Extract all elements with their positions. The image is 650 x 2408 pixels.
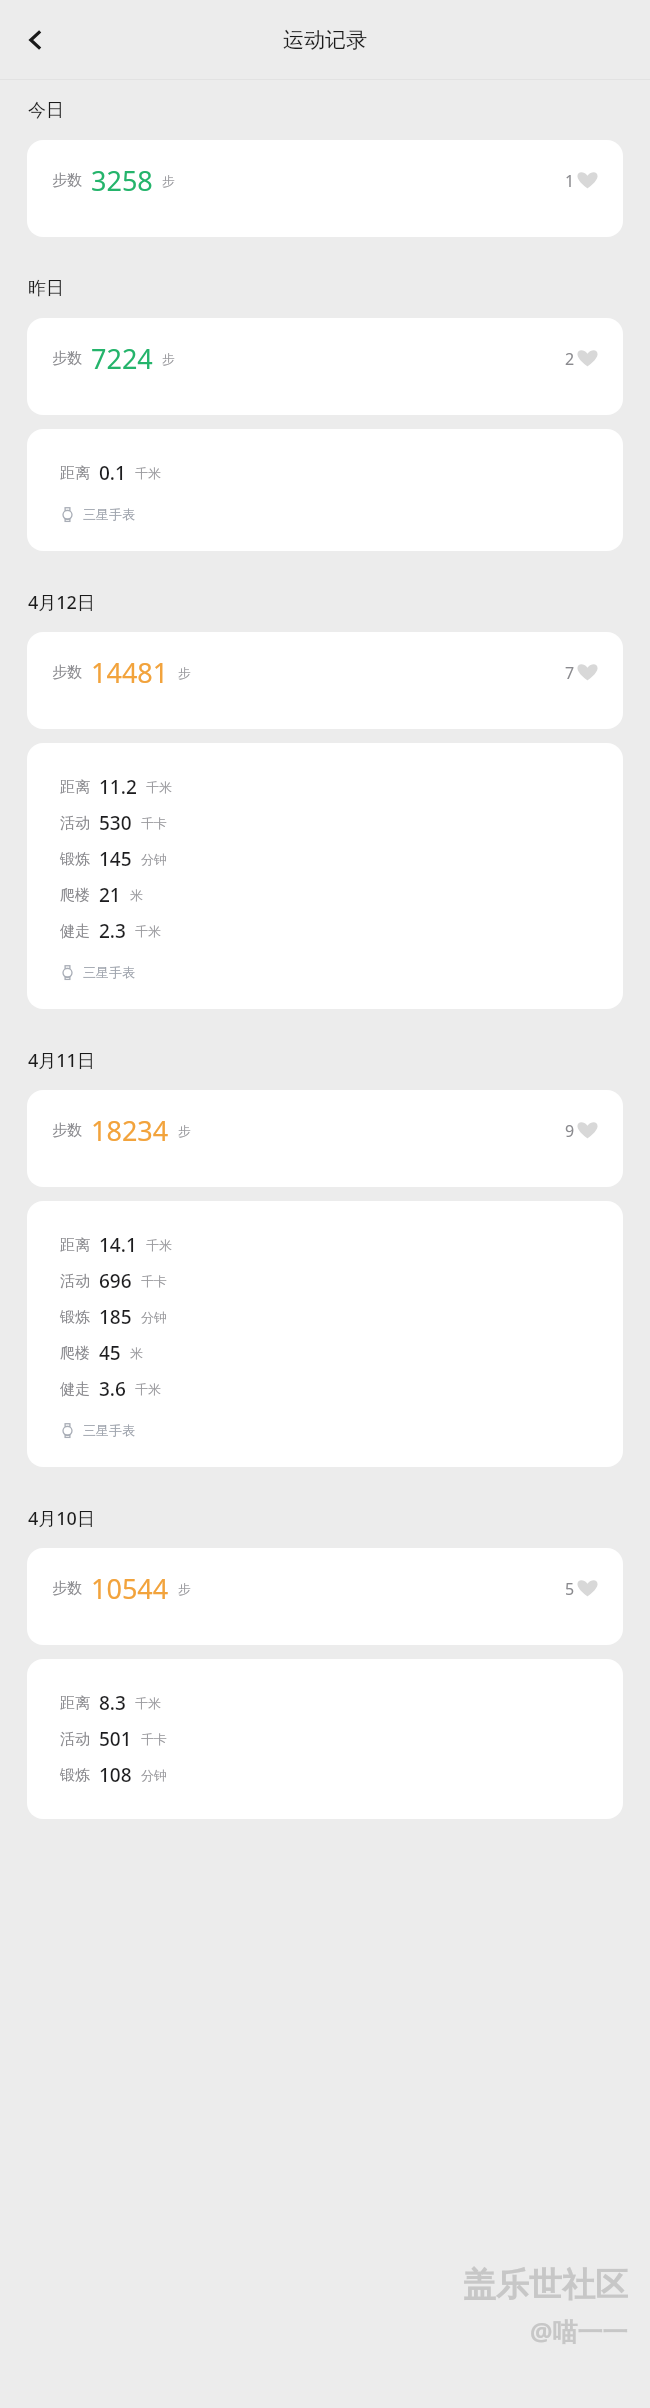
button[interactable]: 步数 bbox=[27, 1090, 623, 1187]
staticText: 爬楼 bbox=[60, 1344, 90, 1363]
button[interactable]: 距离 bbox=[27, 1659, 623, 1819]
staticText: 5 bbox=[565, 1578, 575, 1600]
staticText: 11.2 bbox=[99, 774, 137, 800]
staticText: 7 bbox=[565, 662, 575, 684]
staticText: 千米 bbox=[146, 779, 172, 795]
staticText: 4月11日 bbox=[28, 1048, 95, 1073]
staticText: 8.3 bbox=[99, 1690, 126, 1716]
staticText: 0.1 bbox=[99, 460, 126, 486]
staticText: 活动 bbox=[60, 814, 90, 833]
staticText: 185 bbox=[99, 1304, 132, 1330]
staticText: 步数 bbox=[52, 1121, 82, 1140]
button[interactable]: 距离 bbox=[27, 1201, 623, 1467]
staticText: 3258 bbox=[91, 162, 153, 199]
staticText: 45 bbox=[99, 1340, 121, 1366]
staticText: 千卡 bbox=[141, 1273, 167, 1289]
staticText: 2 bbox=[565, 348, 575, 370]
staticText: 距离 bbox=[60, 778, 90, 797]
staticText: 锻炼 bbox=[60, 1766, 90, 1785]
staticText: 分钟 bbox=[141, 851, 167, 867]
staticText: 步数 bbox=[52, 171, 82, 190]
button[interactable]: 步数 bbox=[27, 140, 623, 237]
staticText: 18234 bbox=[91, 1112, 169, 1149]
staticText: 步 bbox=[162, 173, 175, 189]
button[interactable]: 距离 bbox=[27, 743, 623, 1009]
staticText: 14.1 bbox=[99, 1232, 137, 1258]
staticText: 3.6 bbox=[99, 1376, 126, 1402]
staticText: 距离 bbox=[60, 1694, 90, 1713]
staticText: 21 bbox=[99, 882, 121, 908]
button[interactable]: 步数 bbox=[27, 632, 623, 729]
staticText: 分钟 bbox=[141, 1767, 167, 1783]
staticText: 盖乐世社区 bbox=[463, 2264, 628, 2306]
staticText: 三星手表 bbox=[83, 506, 135, 522]
staticText: 米 bbox=[130, 887, 143, 903]
staticText: 三星手表 bbox=[83, 964, 135, 980]
staticText: 1 bbox=[565, 170, 575, 192]
staticText: 步 bbox=[178, 1581, 191, 1597]
staticText: 距离 bbox=[60, 1236, 90, 1255]
staticText: 108 bbox=[99, 1762, 132, 1788]
staticText: 千米 bbox=[135, 923, 161, 939]
staticText: 千米 bbox=[135, 1381, 161, 1397]
staticText: 今日 bbox=[28, 99, 64, 122]
staticText: 步 bbox=[178, 1123, 191, 1139]
staticText: 530 bbox=[99, 810, 132, 836]
staticText: 2.3 bbox=[99, 918, 126, 944]
button[interactable]: 距离 bbox=[27, 429, 623, 551]
staticText: 4月10日 bbox=[28, 1506, 95, 1531]
button[interactable]: 步数 bbox=[27, 1548, 623, 1645]
staticText: 千卡 bbox=[141, 815, 167, 831]
button[interactable]: 步数 bbox=[27, 318, 623, 415]
staticText: 千米 bbox=[135, 465, 161, 481]
staticText: 分钟 bbox=[141, 1309, 167, 1325]
staticText: 145 bbox=[99, 846, 132, 872]
staticText: 4月12日 bbox=[28, 590, 95, 615]
staticText: 爬楼 bbox=[60, 886, 90, 905]
staticText: 步数 bbox=[52, 1579, 82, 1598]
staticText: 千米 bbox=[146, 1237, 172, 1253]
staticText: 活动 bbox=[60, 1730, 90, 1749]
staticText: 昨日 bbox=[28, 277, 64, 300]
staticText: 696 bbox=[99, 1268, 132, 1294]
staticText: 501 bbox=[99, 1726, 132, 1752]
staticText: 三星手表 bbox=[83, 1422, 135, 1438]
staticText: 距离 bbox=[60, 464, 90, 483]
staticText: @喵一一 bbox=[530, 2314, 628, 2348]
staticText: 千卡 bbox=[141, 1731, 167, 1747]
staticText: 健走 bbox=[60, 922, 90, 941]
staticText: 9 bbox=[565, 1120, 575, 1142]
staticText: 步数 bbox=[52, 349, 82, 368]
staticText: 米 bbox=[130, 1345, 143, 1361]
staticText: 运动记录 bbox=[283, 27, 367, 53]
staticText: 步 bbox=[162, 351, 175, 367]
staticText: 步数 bbox=[52, 663, 82, 682]
staticText: 锻炼 bbox=[60, 850, 90, 869]
staticText: 活动 bbox=[60, 1272, 90, 1291]
staticText: 锻炼 bbox=[60, 1308, 90, 1327]
staticText: 步 bbox=[178, 665, 191, 681]
staticText: 健走 bbox=[60, 1380, 90, 1399]
staticText: 千米 bbox=[135, 1695, 161, 1711]
staticText: 10544 bbox=[91, 1570, 169, 1607]
button[interactable]: Back bbox=[6, 10, 66, 70]
staticText: 7224 bbox=[91, 340, 153, 377]
staticText: 14481 bbox=[91, 654, 169, 691]
